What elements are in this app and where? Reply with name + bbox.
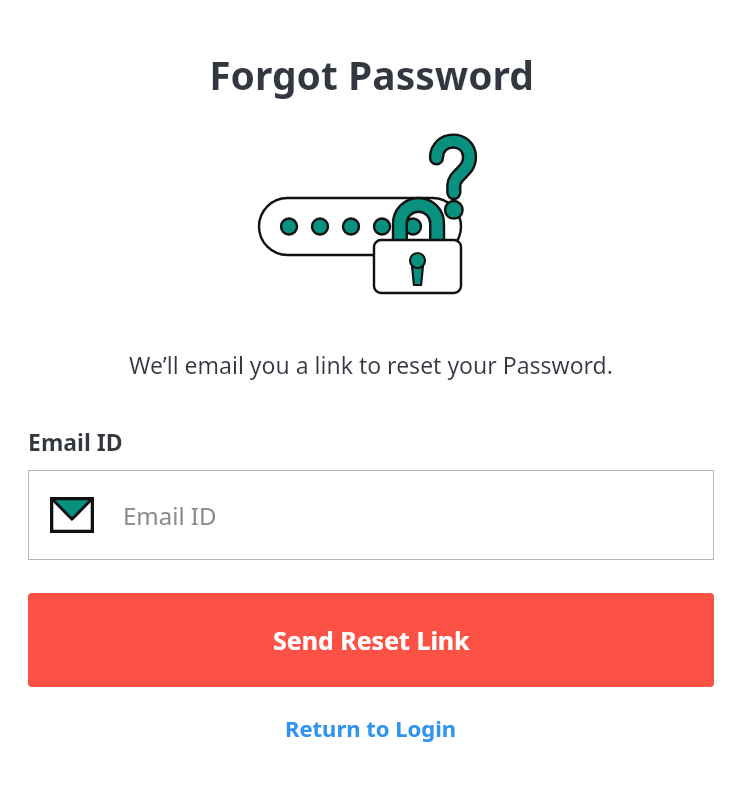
staticText: Email ID [28, 426, 123, 457]
staticText: We’ll email you a link to reset your Pas… [129, 349, 613, 380]
button[interactable]: Send Reset Link [28, 593, 714, 687]
staticText: Email ID [123, 499, 217, 532]
staticText: Return to Login [285, 713, 457, 743]
staticText: Forgot Password [209, 48, 534, 101]
button[interactable]: Return to Login [275, 709, 467, 747]
staticText: Send Reset Link [273, 623, 470, 657]
other: Email [50, 497, 94, 533]
button[interactable]: Email [28, 470, 714, 560]
